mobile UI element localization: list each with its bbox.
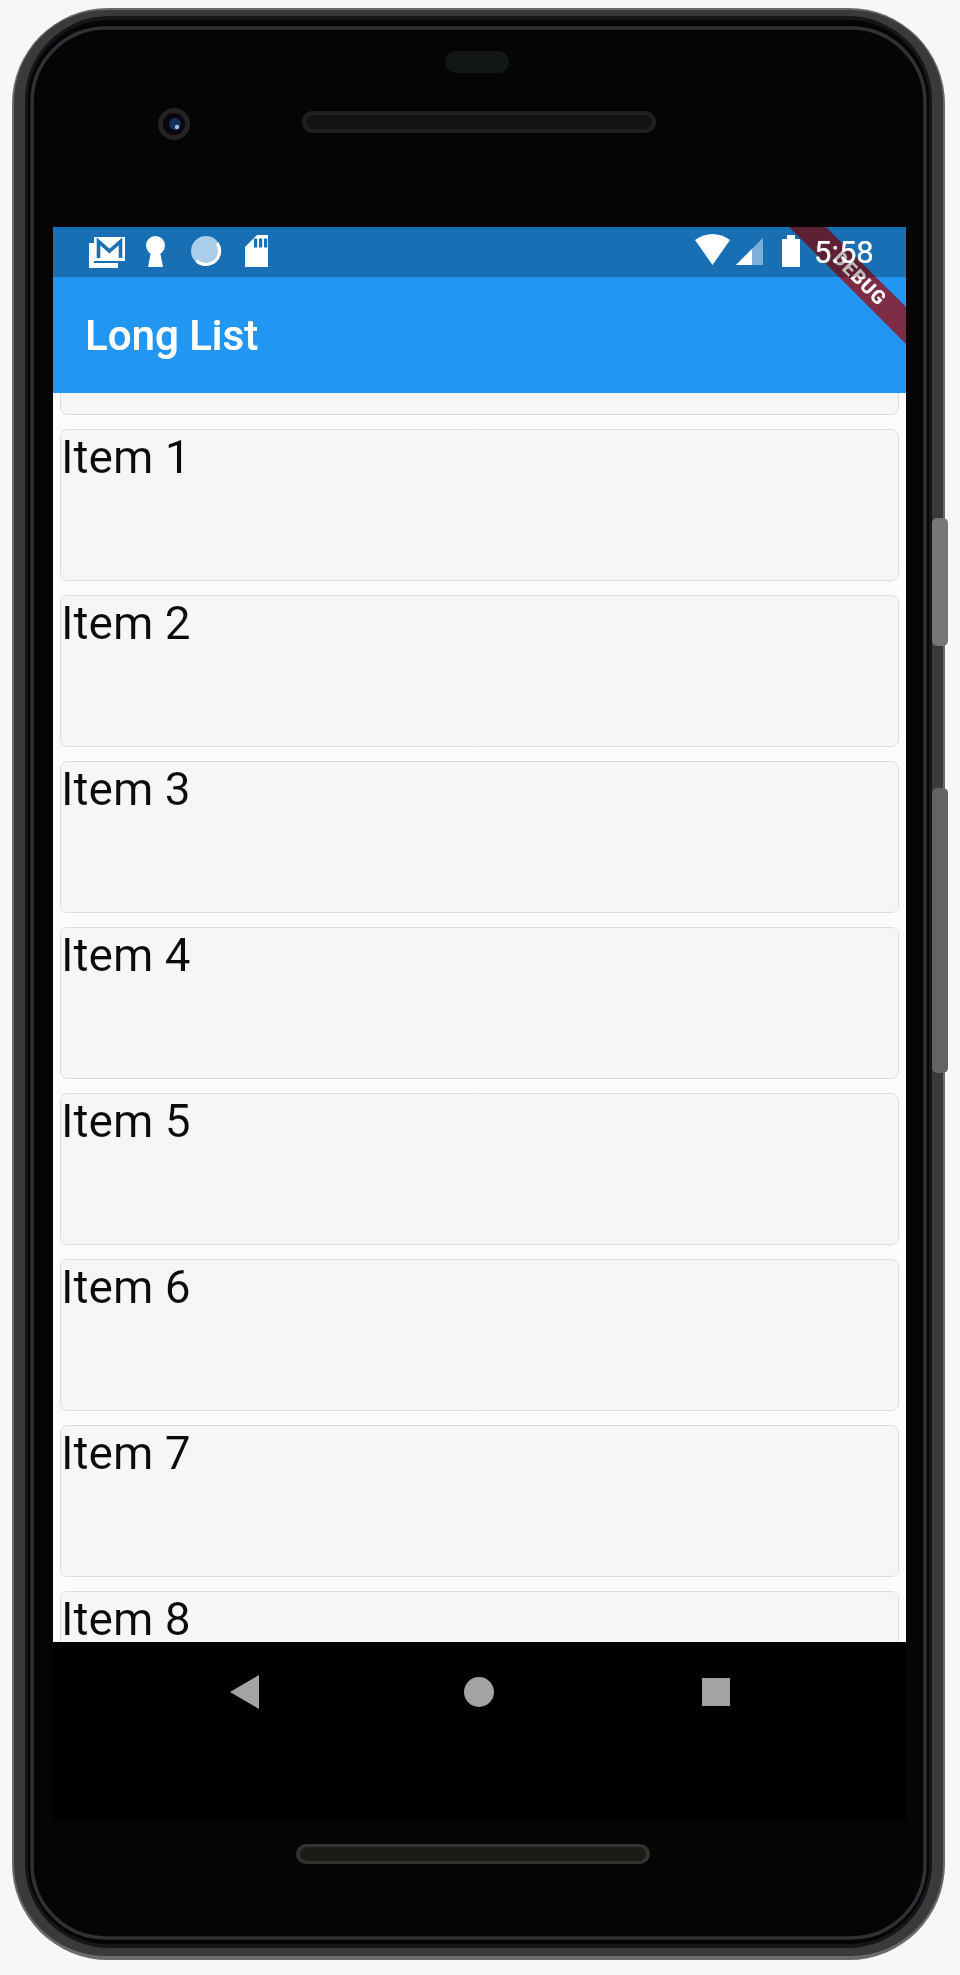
button[interactable]: Home (444, 1642, 514, 1742)
staticText: Item 6 (61, 1260, 191, 1314)
button[interactable]: Long List (53, 277, 906, 393)
button[interactable]: Item 6 (60, 1259, 899, 1411)
button[interactable]: Item 4 (60, 927, 899, 1079)
button[interactable]: Item 3 (60, 761, 899, 913)
staticText: Item 7 (61, 1426, 191, 1480)
staticText: Item 5 (61, 1094, 191, 1148)
staticText: Item 8 (61, 1592, 191, 1642)
button[interactable]: Item 2 (60, 595, 899, 747)
button[interactable]: Recent apps (681, 1642, 751, 1742)
staticText: Long List (85, 311, 259, 360)
staticText: DEBUG (829, 247, 892, 310)
button[interactable]: Item 8 (60, 1591, 899, 1642)
button[interactable]: Item 5 (60, 1093, 899, 1245)
button[interactable]: Back (210, 1642, 280, 1742)
staticText: Item 4 (61, 928, 191, 982)
button[interactable]: Item 7 (60, 1425, 899, 1577)
staticText: Item 2 (61, 596, 191, 650)
button[interactable]: Item 1 (60, 429, 899, 581)
button[interactable]: Item 0 (60, 393, 899, 415)
staticText: Item 3 (61, 762, 191, 816)
staticText: 5:58 (814, 234, 874, 270)
staticText: Item 1 (61, 430, 191, 484)
